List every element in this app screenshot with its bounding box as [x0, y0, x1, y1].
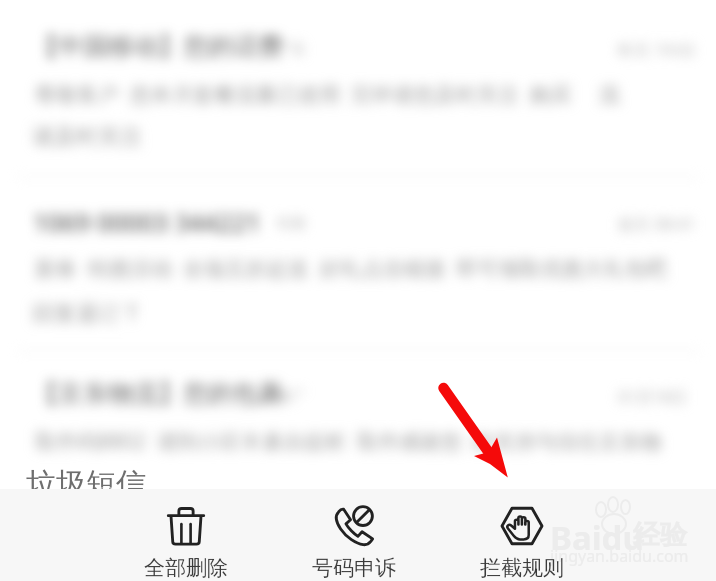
- staticText: 取件码8802 请到小区丰巢自提柜 取件感谢您 的支持与信任京东物: [35, 427, 662, 456]
- button[interactable]: Report number: [270, 489, 438, 581]
- staticText: 请及时关注: [32, 123, 142, 151]
- other: Delete all: [163, 503, 209, 549]
- staticText: 尊敬客户 您本月套餐流量已使用 完毕请您及时关注 购买 流: [35, 80, 621, 109]
- staticText: 新春 特惠活动 全场五折起送 好礼点击链接 即可领取优惠大礼包吧: [35, 254, 667, 283]
- staticText: 拦截规则: [480, 555, 564, 581]
- other: Block rules: [499, 503, 545, 549]
- button[interactable]: Block rules: [438, 489, 606, 581]
- staticText: 昨天 19:02: [618, 39, 696, 61]
- staticText: 垃圾: [276, 214, 306, 233]
- staticText: 01月18日: [618, 386, 687, 408]
- staticText: 垃圾短信: [26, 465, 146, 503]
- other: Report number: [331, 503, 377, 549]
- staticText: 推广: [276, 387, 306, 406]
- staticText: jingyan.baidu.com: [550, 545, 689, 567]
- staticText: 经验: [633, 518, 687, 552]
- staticText: 前天 08:41: [618, 213, 696, 235]
- staticText: 号码申诉: [312, 555, 396, 581]
- button[interactable]: Delete all: [102, 489, 270, 581]
- staticText: 【中国移动】您的话费: [33, 31, 283, 62]
- staticText: 回复退订 T: [32, 297, 138, 327]
- staticText: 全部删除: [144, 555, 228, 581]
- staticText: 1069 00003 344221: [33, 205, 261, 239]
- staticText: 【京东物流】您的包裹: [33, 378, 283, 409]
- staticText: Baidu: [550, 515, 644, 560]
- staticText: 广告: [276, 40, 306, 59]
